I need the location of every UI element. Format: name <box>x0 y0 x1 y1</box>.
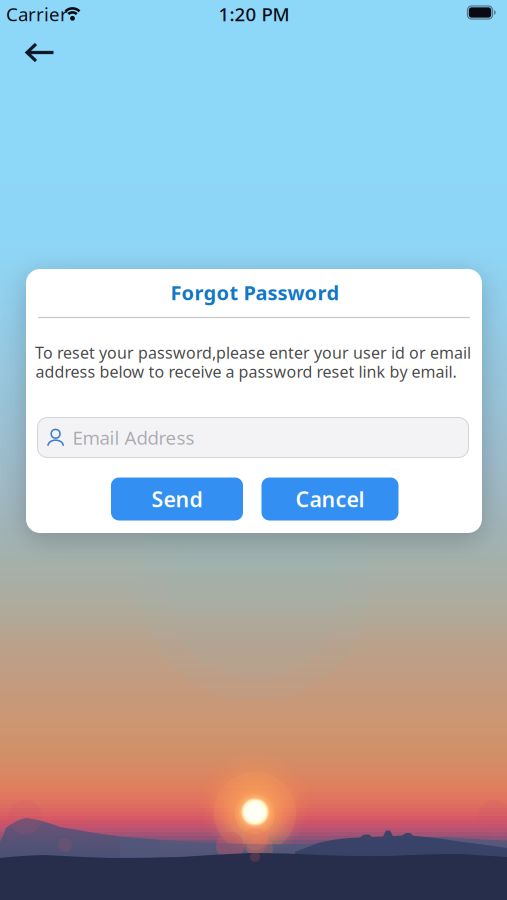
button[interactable]: Back <box>15 33 65 73</box>
staticText: Forgot Password <box>170 279 339 306</box>
staticText: Email Address <box>72 425 194 450</box>
button[interactable]: Send <box>111 477 243 520</box>
staticText: 1:20 PM <box>218 2 289 26</box>
staticText: Cancel <box>295 485 364 513</box>
staticText: Carrier <box>6 2 68 26</box>
staticText: address below to receive a password rese… <box>35 361 456 382</box>
button[interactable]: Email Address <box>37 417 468 457</box>
staticText: Send <box>151 485 202 513</box>
staticText: To reset your password,please enter your… <box>35 342 471 363</box>
button[interactable]: Cancel <box>261 477 398 520</box>
